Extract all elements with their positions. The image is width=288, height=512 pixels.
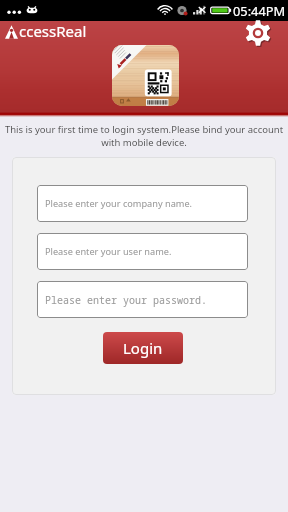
button[interactable]: Please enter your company name. — [37, 185, 248, 222]
staticText: ccessReal — [19, 21, 87, 41]
staticText: Please enter your user name. — [45, 245, 172, 258]
button[interactable]: AccessReal app icon — [112, 45, 179, 106]
button[interactable]: AccessReal — [5, 21, 87, 41]
button[interactable]: Settings — [244, 20, 272, 46]
staticText: This is your first time to login system.… — [4, 123, 284, 149]
staticText: Login — [123, 338, 163, 358]
button[interactable]: Login — [103, 332, 183, 364]
button[interactable]: Please enter your password. — [37, 281, 248, 318]
staticText: Please enter your company name. — [45, 197, 193, 210]
staticText: Please enter your password. — [45, 293, 207, 307]
staticText: 05:44PM — [233, 2, 286, 19]
button[interactable]: Please enter your user name. — [37, 233, 248, 270]
